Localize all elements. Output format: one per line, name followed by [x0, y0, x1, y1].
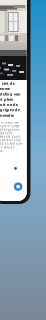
button[interactable]: Profile: [12, 164, 19, 171]
staticText: De renovatie van het plein is deze week …: [0, 121, 22, 153]
staticText: Zo ziet de nieuwe indeling van het plein…: [0, 81, 21, 118]
button[interactable]: Share: [14, 182, 22, 191]
